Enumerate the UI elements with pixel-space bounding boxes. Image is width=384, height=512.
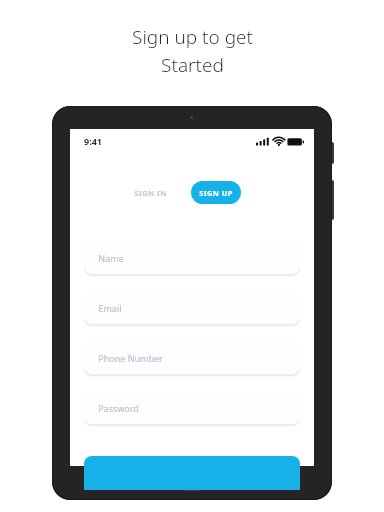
staticText: Started [161,52,224,78]
staticText: Email [98,302,122,314]
button[interactable]: SIGN UP [191,181,241,204]
staticText: SIGN IN [134,188,167,198]
button[interactable]: SIGN IN [128,183,173,203]
staticText: Name [98,252,124,264]
staticText: Phone Number [98,352,163,364]
staticText: Sign up to get [132,24,253,50]
button[interactable]: Phone Number [84,341,300,374]
staticText: 9:41 [84,135,102,147]
button[interactable]: Name [84,241,300,274]
button[interactable]: Email [84,291,300,324]
button[interactable]: Password [84,391,300,424]
staticText: SIGN UP [199,188,233,198]
button[interactable] [84,456,300,490]
staticText: Password [98,402,139,414]
